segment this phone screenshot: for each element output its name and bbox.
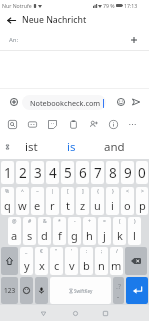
staticText: < (126, 188, 129, 195)
staticText: z (80, 198, 86, 213)
staticText: q (4, 198, 11, 213)
staticText: v (69, 258, 75, 273)
button[interactable]: ; (95, 247, 108, 275)
button[interactable]: ist (14, 136, 48, 158)
button[interactable]: 5 (61, 161, 74, 184)
button[interactable]: .? (113, 277, 124, 304)
staticText: @ (12, 218, 17, 225)
button[interactable]: is (54, 136, 88, 158)
button[interactable]: Backspace (125, 247, 147, 275)
button[interactable]: More (124, 116, 140, 132)
button[interactable]: : (80, 247, 93, 275)
staticText: ; (101, 248, 103, 255)
button[interactable]: Contacts (85, 116, 101, 132)
staticText: 2 (19, 164, 27, 182)
button[interactable]: ) (128, 217, 141, 245)
button[interactable]: Keyboard menu (1, 141, 13, 153)
button[interactable]: @ (8, 217, 21, 245)
button[interactable]: 3 (31, 161, 44, 184)
button[interactable]: % (1, 187, 14, 215)
staticText: is (67, 139, 76, 155)
button[interactable]: Voice input (35, 277, 48, 304)
button[interactable]: Shift (1, 247, 18, 275)
button[interactable]: Sticker (44, 116, 60, 132)
button[interactable]: [ (61, 187, 74, 215)
staticText: * (58, 218, 61, 225)
button[interactable]: 7 (91, 161, 104, 184)
button[interactable]: Notebookcheck.com (22, 95, 106, 110)
button[interactable]: Emoji (20, 277, 33, 304)
button[interactable]: } (106, 187, 119, 215)
staticText: d (41, 228, 48, 243)
button[interactable]: 4 (46, 161, 59, 184)
button[interactable]: + (83, 217, 96, 245)
button[interactable]: < (121, 187, 134, 215)
button[interactable]: _ (20, 247, 33, 275)
button[interactable]: Back (35, 305, 51, 321)
staticText: & (43, 218, 47, 225)
staticText: o (124, 198, 131, 213)
button[interactable]: GIF (24, 116, 40, 132)
staticText: _ (25, 248, 28, 255)
button[interactable]: / (110, 247, 123, 275)
button[interactable]: Enter (126, 277, 148, 304)
button[interactable]: * (53, 217, 66, 245)
button[interactable]: 9 (121, 161, 134, 184)
staticText: m (111, 258, 122, 273)
button[interactable]: 2 (16, 161, 29, 184)
button[interactable]: ' (65, 247, 78, 275)
button[interactable]: Space (50, 277, 111, 304)
staticText: : (86, 248, 88, 255)
button[interactable]: € (35, 247, 48, 275)
button[interactable]: { (91, 187, 104, 215)
button[interactable]: - (68, 217, 81, 245)
button[interactable]: Home (67, 305, 83, 321)
staticText: s (27, 228, 33, 243)
button[interactable]: 0 (136, 161, 148, 184)
button[interactable]: and (96, 136, 132, 158)
staticText: { (97, 188, 99, 195)
button[interactable]: " (50, 247, 63, 275)
staticText: = (103, 218, 106, 225)
staticText: 3 (34, 164, 42, 182)
button[interactable]: Add attachment (6, 94, 22, 110)
button[interactable]: Settings (105, 116, 121, 132)
staticText: t (66, 198, 70, 213)
button[interactable]: = (98, 217, 111, 245)
staticText: w (18, 198, 27, 213)
button[interactable]: Emoji (113, 94, 129, 110)
staticText: 17:13 (124, 2, 138, 9)
button[interactable]: > (136, 187, 148, 215)
button[interactable]: Back (0, 11, 22, 29)
staticText: .? (116, 282, 121, 292)
button[interactable]: | (46, 187, 59, 215)
button[interactable]: 8 (106, 161, 119, 184)
staticText: 7 (94, 164, 102, 182)
button[interactable]: Add recipient (124, 30, 144, 50)
staticText: # (28, 218, 32, 225)
staticText: x (39, 258, 45, 273)
button[interactable]: & (38, 217, 51, 245)
staticText: 9 (124, 164, 132, 182)
staticText: 5 (64, 164, 72, 182)
button[interactable]: Recents (97, 305, 113, 321)
button[interactable]: ] (76, 187, 89, 215)
staticText: . (117, 290, 120, 300)
staticText: Notebookcheck.com (30, 98, 101, 108)
staticText: ) (134, 218, 136, 225)
button[interactable]: 6 (76, 161, 89, 184)
button[interactable]: Search (4, 116, 20, 132)
staticText: ( (119, 218, 121, 225)
button[interactable]: Send (128, 94, 144, 110)
button[interactable]: ^ (16, 187, 29, 215)
staticText: € (40, 248, 43, 255)
button[interactable]: 1 (1, 161, 14, 184)
button[interactable]: Clipboard (65, 116, 81, 132)
button[interactable]: # (23, 217, 36, 245)
button[interactable]: 123 (1, 277, 18, 304)
staticText: Neue Nachricht (22, 14, 87, 26)
button[interactable]: ~ (31, 187, 44, 215)
staticText: | (51, 188, 54, 195)
button[interactable]: ( (113, 217, 126, 245)
staticText: j (103, 228, 106, 243)
